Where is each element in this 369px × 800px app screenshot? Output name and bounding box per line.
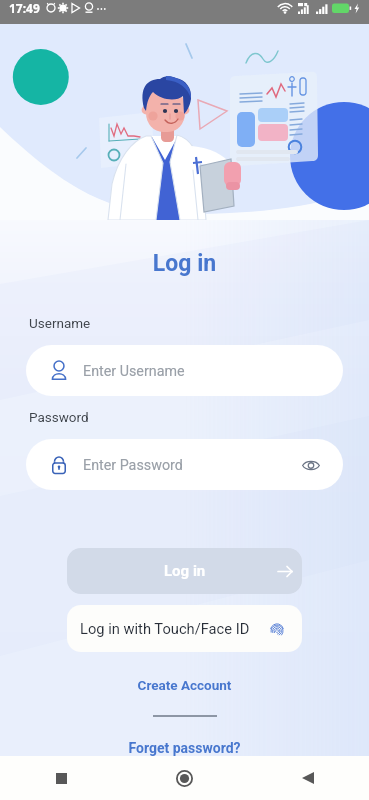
button[interactable]: Home bbox=[123, 756, 246, 800]
button[interactable]: Back bbox=[246, 756, 369, 800]
staticText: Log in bbox=[164, 562, 206, 580]
button[interactable]: Enter Password bbox=[26, 439, 343, 490]
staticText: Log in with Touch/Face ID bbox=[80, 620, 250, 637]
button[interactable]: Log in with Touch/Face ID bbox=[67, 605, 302, 652]
staticText: Enter Username bbox=[83, 363, 185, 380]
button[interactable]: Enter Username bbox=[26, 345, 343, 396]
button[interactable]: Log in bbox=[67, 548, 302, 594]
staticText: Log in bbox=[0, 250, 369, 277]
button[interactable]: Show password bbox=[291, 445, 331, 485]
button[interactable]: Recents bbox=[0, 756, 123, 800]
staticText: Password bbox=[29, 409, 89, 425]
button[interactable]: Create Account bbox=[0, 677, 369, 693]
staticText: Username bbox=[29, 315, 91, 331]
staticText: 17:49 bbox=[9, 0, 40, 16]
staticText: Enter Password bbox=[83, 457, 183, 474]
button[interactable]: Forget password? bbox=[0, 740, 369, 756]
